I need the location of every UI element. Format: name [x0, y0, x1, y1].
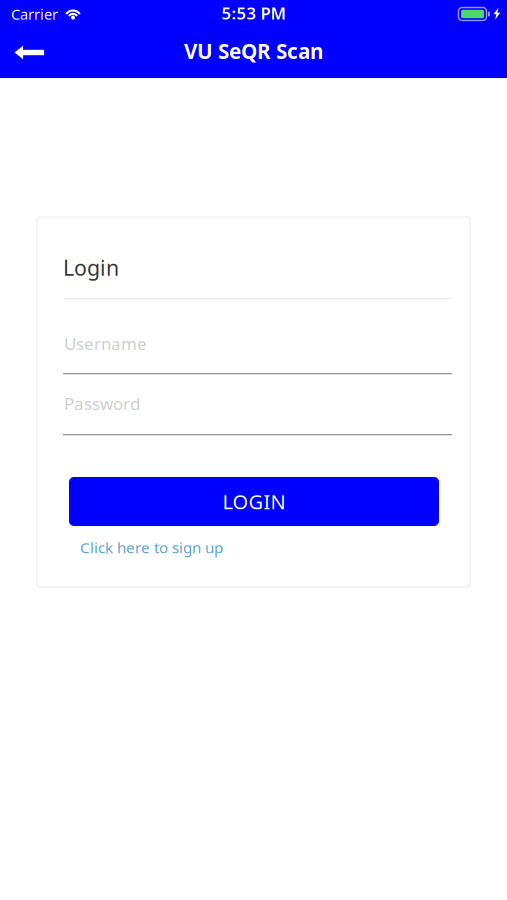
button[interactable]: Click here to sign up: [76, 534, 227, 561]
button[interactable]: Back: [0, 30, 59, 76]
staticText: LOGIN: [222, 488, 285, 515]
staticText: Carrier: [11, 4, 58, 24]
staticText: Username: [64, 332, 147, 355]
staticText: VU SeQR Scan: [184, 37, 323, 65]
staticText: Password: [64, 392, 140, 415]
staticText: Click here to sign up: [80, 537, 223, 558]
staticText: Login: [63, 253, 119, 282]
staticText: 5:53 PM: [221, 2, 285, 24]
button[interactable]: LOGIN: [69, 477, 439, 526]
